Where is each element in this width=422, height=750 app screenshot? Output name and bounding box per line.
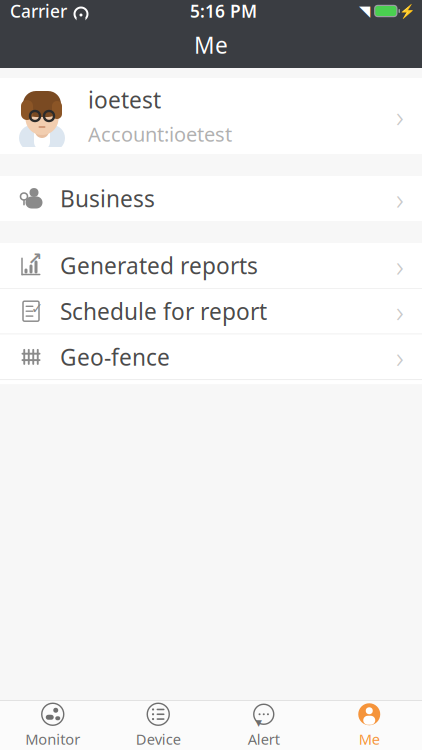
- button[interactable]: Geo-fence: [0, 334, 422, 380]
- staticText: Account:ioetest: [88, 121, 232, 147]
- button[interactable]: ↗: [0, 243, 422, 289]
- staticText: ioetest: [88, 85, 161, 115]
- staticText: ›: [396, 292, 404, 331]
- staticText: ▾: [255, 715, 262, 730]
- staticText: ◥: [359, 3, 370, 19]
- staticText: 5:16 PM: [190, 0, 257, 22]
- staticText: ↗: [27, 249, 42, 268]
- button[interactable]: Device: [105, 696, 211, 750]
- staticText: Schedule for report: [60, 296, 267, 326]
- staticText: Monitor: [25, 729, 80, 749]
- button[interactable]: ▾: [211, 696, 316, 750]
- staticText: [67, 0, 73, 26]
- button[interactable]: ✓: [0, 289, 422, 334]
- staticText: ✓: [31, 300, 43, 316]
- button[interactable]: Monitor: [0, 696, 105, 750]
- staticText: Me: [359, 729, 380, 749]
- staticText: ›: [396, 337, 404, 376]
- staticText: ›: [396, 246, 404, 285]
- staticText: Device: [136, 729, 181, 749]
- button[interactable]: Business: [0, 176, 422, 221]
- staticText: Generated reports: [60, 250, 258, 280]
- staticText: ›: [396, 96, 404, 135]
- staticText: Alert: [248, 729, 280, 749]
- button[interactable]: ioetest: [0, 78, 422, 154]
- staticText: ⚡: [399, 3, 416, 19]
- staticText: Business: [60, 183, 155, 213]
- button[interactable]: Me: [316, 696, 422, 750]
- staticText: Me: [194, 30, 228, 60]
- staticText: Geo-fence: [60, 342, 170, 372]
- staticText: Carrier: [10, 0, 67, 22]
- staticText: ›: [396, 179, 404, 218]
